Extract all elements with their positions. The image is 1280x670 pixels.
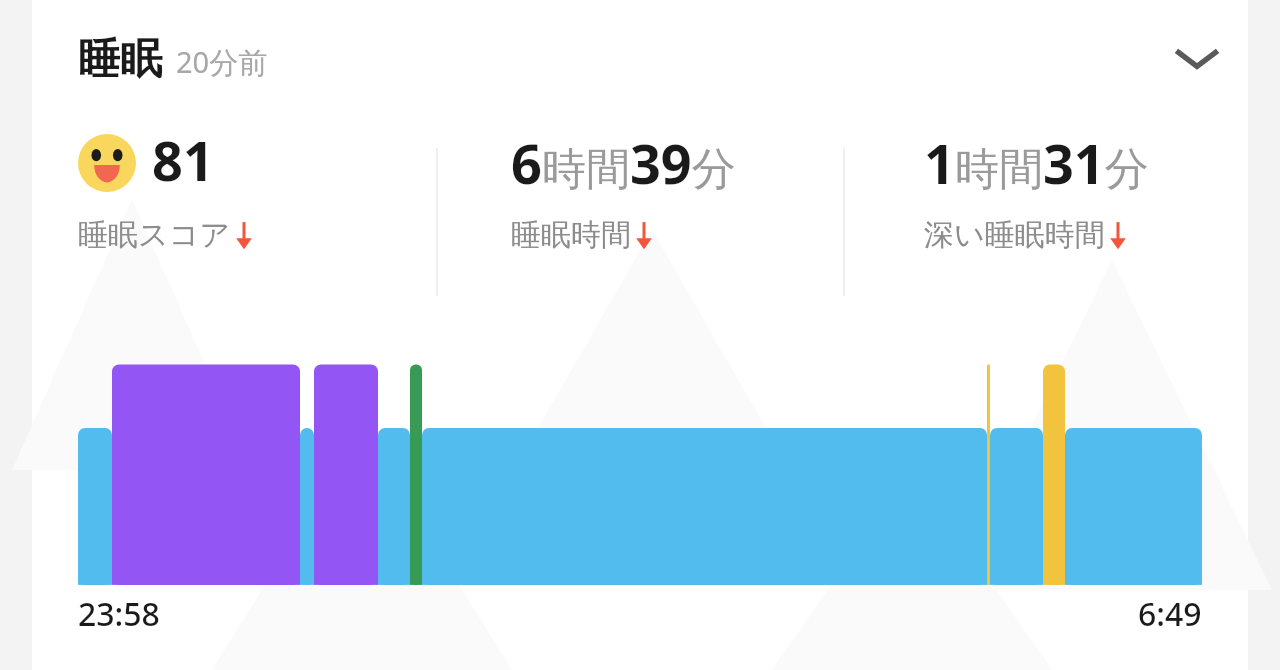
staticText: 81 bbox=[152, 123, 214, 197]
staticText: 23:58 bbox=[78, 592, 160, 636]
staticText: 睡眠スコア bbox=[78, 216, 231, 254]
button[interactable]: 1時間31分 bbox=[843, 118, 1248, 254]
staticText: 6:49 bbox=[1138, 592, 1202, 636]
staticText: 睡眠 bbox=[78, 33, 162, 86]
staticText: 睡眠時間 bbox=[511, 216, 631, 254]
staticText: 6時間39分 bbox=[511, 126, 736, 200]
button[interactable]: Sleep stages chart bbox=[78, 358, 1202, 590]
staticText: 深い睡眠時間 bbox=[924, 216, 1105, 254]
staticText: 20分前 bbox=[176, 42, 268, 82]
button[interactable]: 睡眠 bbox=[32, 33, 1170, 86]
button[interactable]: Collapse bbox=[1158, 20, 1236, 98]
button[interactable]: 6時間39分 bbox=[436, 118, 843, 254]
staticText: 1時間31分 bbox=[924, 126, 1149, 200]
button[interactable]: 81 bbox=[32, 118, 436, 254]
